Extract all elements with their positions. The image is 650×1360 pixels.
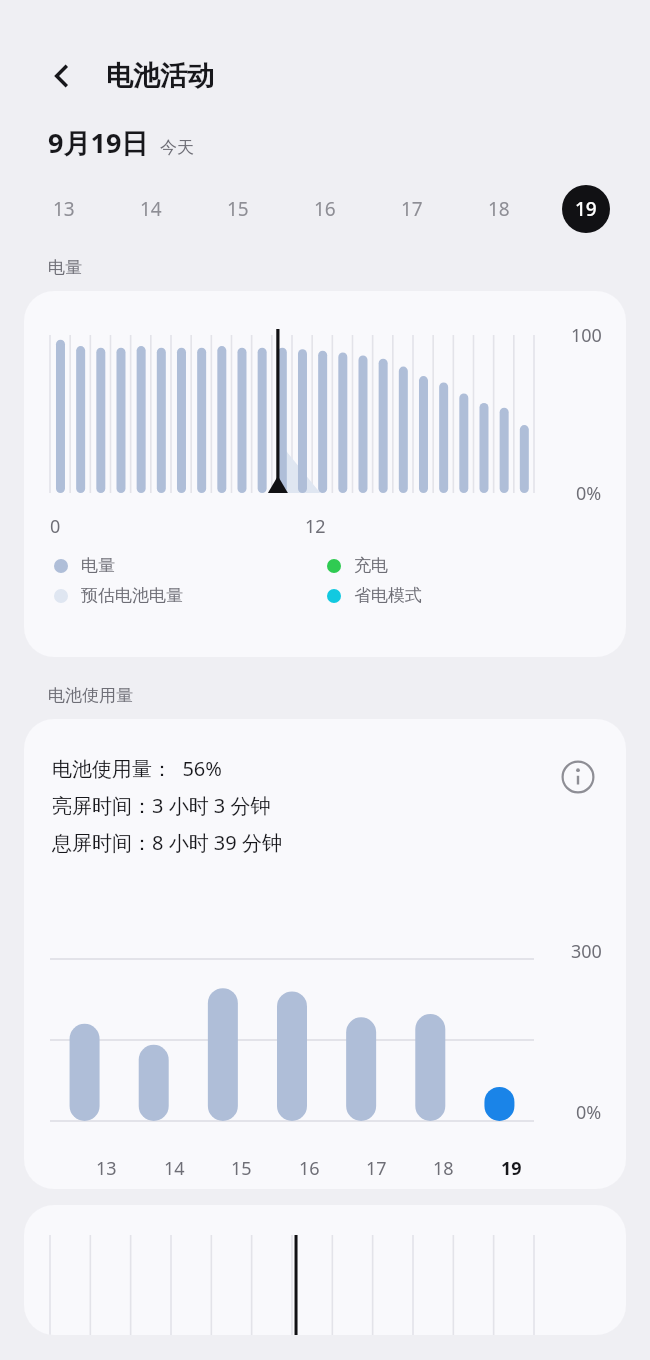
button[interactable]: 19 xyxy=(562,185,610,233)
button[interactable]: 电池使用量： 56% xyxy=(24,719,626,1189)
staticText: 19 xyxy=(575,196,597,222)
button[interactable]: 省电模式 xyxy=(327,585,600,606)
staticText: 16 xyxy=(314,196,336,222)
staticText: 18 xyxy=(433,1156,454,1181)
staticText: 13 xyxy=(96,1156,117,1181)
button[interactable]: 13 xyxy=(40,185,88,233)
staticText: 12 xyxy=(305,514,326,539)
button[interactable] xyxy=(24,1205,626,1335)
staticText: 电池使用量 xyxy=(48,685,133,706)
staticText: 9月19日 xyxy=(48,124,149,161)
button[interactable]: Info xyxy=(556,755,600,799)
staticText: 100 xyxy=(571,323,602,348)
staticText: 电量 xyxy=(48,257,82,278)
staticText: 19 xyxy=(501,1156,522,1181)
button[interactable]: 预估电池电量 xyxy=(54,585,327,606)
staticText: 充电 xyxy=(354,555,388,576)
button[interactable]: 100 xyxy=(24,291,626,657)
staticText: 省电模式 xyxy=(354,585,422,606)
staticText: 今天 xyxy=(160,137,194,158)
button[interactable]: 充电 xyxy=(327,555,600,576)
staticText: 电量 xyxy=(81,555,115,576)
button[interactable]: 18 xyxy=(475,185,523,233)
staticText: 300 xyxy=(571,939,602,964)
button[interactable]: Back xyxy=(40,54,84,98)
staticText: 13 xyxy=(53,196,75,222)
staticText: 亮屏时间：3 小时 3 分钟 xyxy=(52,792,271,819)
staticText: 电池使用量： 56% xyxy=(52,755,222,782)
button[interactable]: 14 xyxy=(127,185,175,233)
staticText: 0% xyxy=(576,1100,602,1125)
staticText: 18 xyxy=(488,196,510,222)
button[interactable]: 15 xyxy=(214,185,262,233)
staticText: 17 xyxy=(366,1156,387,1181)
button[interactable]: 16 xyxy=(301,185,349,233)
staticText: 15 xyxy=(227,196,249,222)
staticText: 17 xyxy=(401,196,423,222)
staticText: 电池活动 xyxy=(106,59,214,93)
staticText: 0 xyxy=(50,514,61,539)
staticText: 预估电池电量 xyxy=(81,585,183,606)
button[interactable]: 17 xyxy=(388,185,436,233)
staticText: 息屏时间：8 小时 39 分钟 xyxy=(52,829,282,856)
staticText: 15 xyxy=(231,1156,252,1181)
staticText: 14 xyxy=(140,196,162,222)
staticText: 0% xyxy=(576,481,602,506)
staticText: 14 xyxy=(164,1156,185,1181)
button[interactable]: 电量 xyxy=(54,555,327,576)
staticText: 16 xyxy=(299,1156,320,1181)
